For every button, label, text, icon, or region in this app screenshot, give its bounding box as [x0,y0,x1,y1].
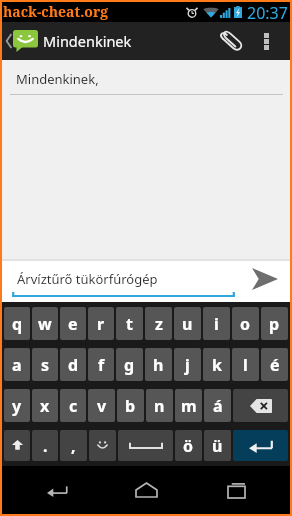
button[interactable]: p [261,307,288,340]
staticText: b [125,395,136,417]
button[interactable]: f [88,348,114,381]
staticText: a [12,354,22,376]
staticText: u [182,313,193,335]
button[interactable]: y [4,389,30,422]
staticText: , [71,435,76,457]
button[interactable]: g [116,348,143,381]
staticText: Mindenkinek [43,31,132,51]
button[interactable]: s [32,348,58,381]
staticText: ü [212,435,223,457]
button[interactable]: Back [22,466,92,514]
button[interactable]: z [145,307,172,340]
button[interactable]: a [4,348,30,381]
staticText: i [214,313,219,335]
button[interactable]: , [60,430,87,461]
button[interactable]: Space [118,430,173,461]
button[interactable]: Home [111,466,181,514]
staticText: á [213,395,223,417]
staticText: z [155,313,163,335]
staticText: p [269,313,280,335]
staticText: hack-cheat.org [3,2,109,21]
button[interactable]: Send [235,261,290,302]
staticText: c [69,395,78,417]
button[interactable]: Backspace [233,389,288,422]
other: Enter [249,439,273,453]
button[interactable]: l [232,348,259,381]
button[interactable]: ü [204,430,231,461]
staticText: m [181,395,197,417]
button[interactable]: b [117,389,144,422]
staticText: t [126,313,133,335]
staticText: q [12,313,23,335]
button[interactable]: Enter [233,430,288,461]
button[interactable]: é [261,348,288,381]
button[interactable]: x [32,389,58,422]
staticText: f [98,354,105,376]
button[interactable]: q [4,307,30,340]
staticText: o [240,313,251,335]
staticText: j [185,354,190,376]
staticText: s [41,354,50,376]
button[interactable]: e [60,307,86,340]
other: Emoji [96,440,109,451]
staticText: Árvíztűrő tükörfúrógép [17,270,158,288]
staticText: n [154,395,165,417]
other: Backspace [250,399,272,413]
button[interactable]: o [232,307,259,340]
button[interactable]: t [116,307,143,340]
button[interactable]: c [60,389,86,422]
staticText: Mindenkinek, [16,70,99,88]
staticText: v [97,395,107,417]
button[interactable]: n [146,389,173,422]
button[interactable]: v [88,389,115,422]
staticText: é [270,354,280,376]
button[interactable]: w [32,307,58,340]
button[interactable]: r [88,307,114,340]
button[interactable]: Shift [4,430,30,461]
other: Shift [10,439,25,453]
button[interactable]: k [203,348,230,381]
button[interactable]: i [203,307,230,340]
staticText: l [243,354,248,376]
staticText: g [124,354,135,376]
button[interactable]: ö [175,430,202,461]
staticText: h [153,354,164,376]
button[interactable]: h [145,348,172,381]
button[interactable]: á [204,389,231,422]
button[interactable]: Recent apps [201,466,271,514]
staticText: d [68,354,79,376]
other: Space [129,442,163,449]
staticText: y [12,395,22,417]
button[interactable]: u [174,307,201,340]
button[interactable]: More options [252,22,280,60]
button[interactable]: j [174,348,201,381]
button[interactable]: . [32,430,58,461]
staticText: ö [183,435,194,457]
button[interactable]: Attach [212,22,252,60]
button[interactable]: d [60,348,86,381]
staticText: . [43,435,48,457]
button[interactable]: Emoji [89,430,116,461]
button[interactable]: Navigate up [2,22,39,60]
staticText: x [40,395,50,417]
staticText: w [38,313,52,335]
staticText: r [97,313,105,335]
staticText: k [212,354,222,376]
staticText: 20:37 [247,2,288,22]
staticText: e [68,313,78,335]
button[interactable]: m [175,389,202,422]
